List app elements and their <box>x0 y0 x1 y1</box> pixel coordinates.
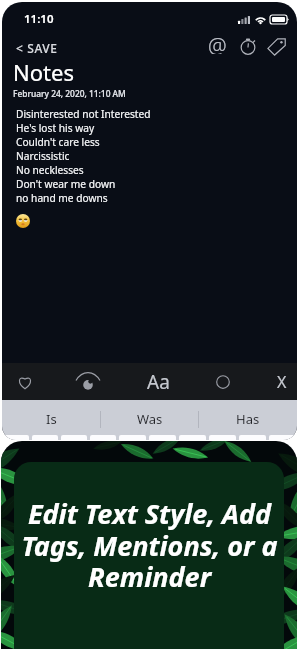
button[interactable]: Favorite <box>2 363 47 400</box>
button[interactable]: Set reminder <box>235 35 260 57</box>
staticText: < SAVE <box>16 40 58 54</box>
button[interactable]: X <box>254 363 297 400</box>
button[interactable]: Is <box>2 405 101 433</box>
button[interactable]: Draw <box>194 363 252 400</box>
staticText: Is <box>46 410 57 428</box>
button[interactable]: Was <box>101 405 199 433</box>
staticText: Has <box>236 410 260 428</box>
staticText: Aa <box>147 369 170 395</box>
staticText: Edit Text Style, Add Tags, Mentions, or … <box>21 495 278 595</box>
staticText: X <box>277 371 287 393</box>
button[interactable]: < SAVE <box>12 36 62 58</box>
button[interactable]: Preview <box>64 363 112 400</box>
button[interactable]: Has <box>199 405 297 433</box>
staticText: @ <box>208 32 227 54</box>
button[interactable]: Add tag <box>264 35 289 57</box>
staticText: Disinterested not Interested He's lost h… <box>16 107 151 205</box>
button[interactable]: Mention <box>205 32 230 54</box>
staticText: 11:10 <box>24 11 54 27</box>
staticText: February 24, 2020, 11:10 AM <box>13 88 126 99</box>
staticText: Was <box>137 410 163 428</box>
button[interactable]: Aa <box>127 363 189 400</box>
staticText: Notes <box>13 57 74 87</box>
